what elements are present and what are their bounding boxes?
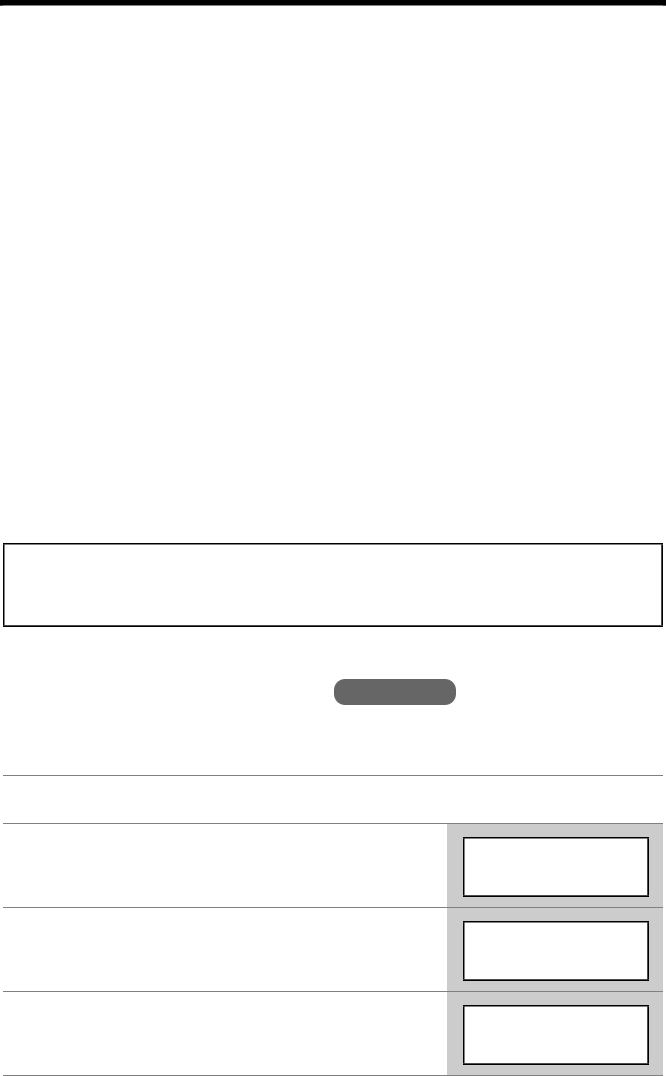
button[interactable]: Send — [334, 679, 456, 705]
button[interactable]: Item 3 — [3, 992, 663, 1075]
button[interactable]: Item 2 — [3, 908, 663, 991]
button[interactable]: Item 1 — [3, 824, 663, 907]
button[interactable]: Message — [3, 543, 663, 627]
